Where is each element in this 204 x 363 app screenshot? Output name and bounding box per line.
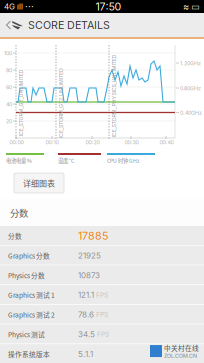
staticText: 4G (4, 2, 15, 11)
staticText: Graphics 测试 2 (8, 310, 55, 319)
staticText: 17:50 (95, 0, 121, 13)
staticText: ICE_STORM_GT_UNLIMITED (0, 100, 54, 106)
staticText: ▭ (191, 1, 200, 12)
staticText: 17885 (78, 229, 108, 242)
staticText: Graphics 测试 1 (8, 290, 55, 300)
staticText: 00:00 (9, 139, 23, 145)
button[interactable]: 操作系统版本 (0, 344, 204, 363)
staticText: 操作系统版本 (8, 349, 50, 359)
staticText: 00:20 (85, 139, 99, 145)
staticText: 分数 (8, 231, 22, 241)
staticText: 温度 °C (58, 156, 74, 164)
staticText: ··· (25, 1, 34, 12)
button[interactable]: Graphics 测试 1 (0, 285, 204, 305)
staticText: 21925 (78, 251, 101, 260)
staticText: ıll (17, 2, 23, 11)
staticText: 中关村在线 (164, 343, 199, 353)
button[interactable]: Physics 分数 (0, 265, 204, 285)
staticText: FPS (94, 291, 108, 299)
button[interactable]: Physics 测试 (0, 324, 204, 344)
staticText: 详细图表 (23, 177, 55, 189)
button[interactable]: 详细图表 (14, 173, 64, 193)
staticText: FPS (95, 330, 109, 338)
staticText: 电池电量 % (6, 156, 32, 164)
staticText: 78.6 (78, 310, 94, 319)
staticText: 80 (6, 67, 12, 73)
staticText: 60 (6, 84, 12, 90)
staticText: Graphics 分数 (8, 251, 50, 260)
staticText: 1.20GHz (180, 60, 201, 66)
staticText: 00:10 (45, 139, 58, 145)
staticText: Physics 分数 (8, 270, 45, 280)
staticText: 00:30 (124, 139, 138, 145)
staticText: FPS (94, 311, 108, 319)
staticText: 10873 (78, 270, 100, 280)
staticText: 40 (6, 101, 12, 107)
staticText: ZOL.COM.CN (164, 353, 197, 359)
staticText: ICE_STORM_GT2_UNLIMITED (26, 100, 96, 106)
staticText: 00:40 (159, 139, 173, 145)
staticText: SCORE DETAILS (28, 18, 110, 31)
staticText: ICE_STORM_PHYSICS_UNLIMITED (72, 93, 155, 99)
staticText: 121.1 (78, 290, 94, 300)
staticText: 5.1.1 (78, 349, 93, 359)
button[interactable]: Back (3, 13, 11, 37)
staticText: 20 (6, 118, 12, 124)
staticText: ≈ (183, 1, 189, 12)
button[interactable]: 分数 (0, 226, 204, 246)
button[interactable]: Graphics 分数 (0, 246, 204, 265)
staticText: 34.5 (78, 329, 95, 339)
staticText: Physics 测试 (8, 329, 45, 339)
button[interactable]: Graphics 测试 2 (0, 305, 204, 324)
staticText: 100 (4, 50, 12, 56)
staticText: 0.40GHz (180, 109, 202, 116)
staticText: 0.80GHz (180, 85, 201, 91)
staticText: 分数 (10, 206, 28, 219)
staticText: CPU 时钟 GHz (107, 156, 140, 164)
